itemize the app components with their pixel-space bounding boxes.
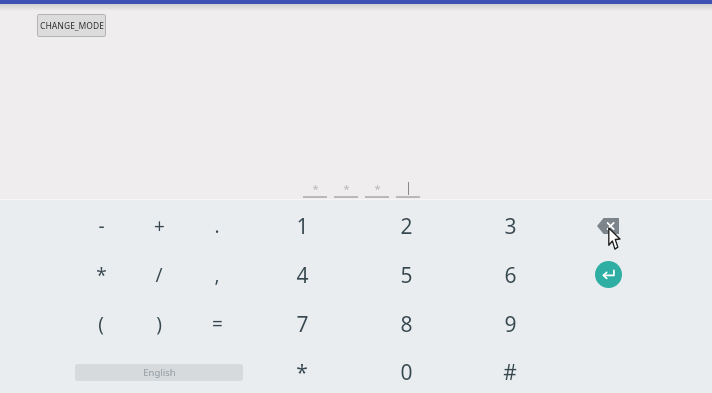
button[interactable]: , <box>191 251 243 299</box>
button[interactable]: * <box>276 348 328 393</box>
button[interactable]: 5 <box>380 251 432 299</box>
button[interactable]: + <box>133 202 185 250</box>
staticText: ) <box>156 311 162 337</box>
button[interactable]: . <box>191 202 243 250</box>
button[interactable]: 7 <box>276 300 328 348</box>
staticText: * <box>374 181 381 195</box>
button[interactable]: 1 <box>276 202 328 250</box>
button[interactable]: English <box>75 364 243 381</box>
staticText: # <box>503 358 517 387</box>
button[interactable]: 3 <box>484 202 536 250</box>
button[interactable]: # <box>484 348 536 393</box>
staticText: = <box>212 311 223 337</box>
button[interactable]: 9 <box>484 300 536 348</box>
staticText: * <box>296 358 308 387</box>
staticText: 0 <box>400 358 413 387</box>
staticText: English <box>143 366 176 379</box>
staticText: * <box>312 181 319 195</box>
staticText: / <box>155 262 163 288</box>
staticText: - <box>98 213 105 239</box>
staticText: , <box>214 262 220 288</box>
staticText: + <box>154 213 165 239</box>
button[interactable]: - <box>75 202 127 250</box>
button[interactable]: ) <box>133 300 185 348</box>
button[interactable]: Enter <box>595 261 622 288</box>
staticText: * <box>96 262 107 288</box>
staticText: 4 <box>296 261 309 290</box>
staticText: 5 <box>400 261 413 290</box>
staticText: 3 <box>504 212 517 241</box>
button[interactable]: / <box>133 251 185 299</box>
staticText: 6 <box>504 261 517 290</box>
button[interactable]: CHANGE_MODE <box>37 14 106 37</box>
button[interactable]: 6 <box>484 251 536 299</box>
button[interactable]: = <box>191 300 243 348</box>
button[interactable]: * <box>75 251 127 299</box>
button[interactable]: ( <box>75 300 127 348</box>
staticText: CHANGE_MODE <box>40 20 104 32</box>
staticText: . <box>214 213 220 239</box>
staticText: 7 <box>296 310 309 339</box>
staticText: * <box>343 181 350 195</box>
button[interactable]: Delete <box>594 212 622 240</box>
staticText: 1 <box>296 212 309 241</box>
staticText: 2 <box>400 212 413 241</box>
button[interactable]: 0 <box>380 348 432 393</box>
button[interactable]: 4 <box>276 251 328 299</box>
staticText: ( <box>98 311 104 337</box>
button[interactable]: 8 <box>380 300 432 348</box>
staticText: 9 <box>504 310 517 339</box>
staticText: 8 <box>400 310 413 339</box>
button[interactable]: 2 <box>380 202 432 250</box>
